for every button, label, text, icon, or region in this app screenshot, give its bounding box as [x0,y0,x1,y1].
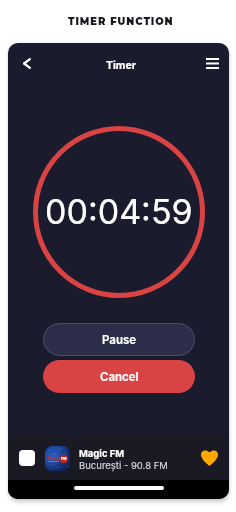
button[interactable]: Pause [43,323,195,356]
staticText: Timer [106,59,136,72]
staticText: București - 90.8 FM [79,460,168,471]
staticText: Cancel [100,370,139,384]
button[interactable]: Back [14,50,40,76]
staticText: 00:04:59 [45,191,193,232]
button[interactable]: Menu [199,50,225,76]
button[interactable]: Stop playback [19,450,35,466]
staticText: FM [61,457,67,461]
button[interactable]: Cancel [43,360,195,393]
staticText: Magic FM [79,448,125,459]
staticText: TIMER FUNCTION [68,15,174,27]
staticText: Pause [102,333,137,347]
staticText: Magic [48,455,64,461]
button[interactable]: Favorite [196,444,222,470]
